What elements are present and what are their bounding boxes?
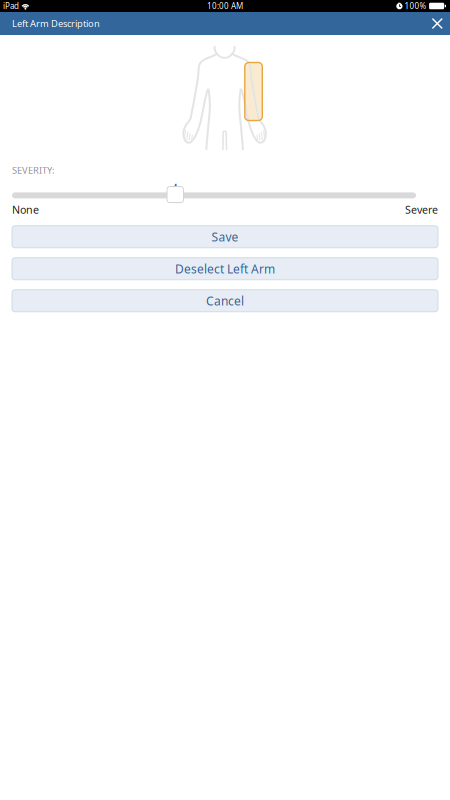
button[interactable]: Cancel: [12, 290, 438, 312]
button[interactable]: Close: [427, 13, 448, 34]
staticText: 10:00 AM: [207, 1, 243, 11]
staticText: iPad: [3, 1, 19, 11]
staticText: Left Arm Description: [12, 17, 100, 30]
staticText: SEVERITY:: [12, 164, 55, 176]
staticText: Deselect Left Arm: [175, 261, 275, 277]
button[interactable]: Save: [12, 226, 438, 248]
staticText: 4: [173, 182, 178, 193]
staticText: 100%: [405, 1, 427, 11]
staticText: Cancel: [206, 293, 244, 309]
staticText: Save: [211, 229, 238, 245]
button[interactable]: Deselect Left Arm: [12, 258, 438, 280]
staticText: Severe: [405, 203, 438, 217]
staticText: None: [12, 203, 39, 217]
